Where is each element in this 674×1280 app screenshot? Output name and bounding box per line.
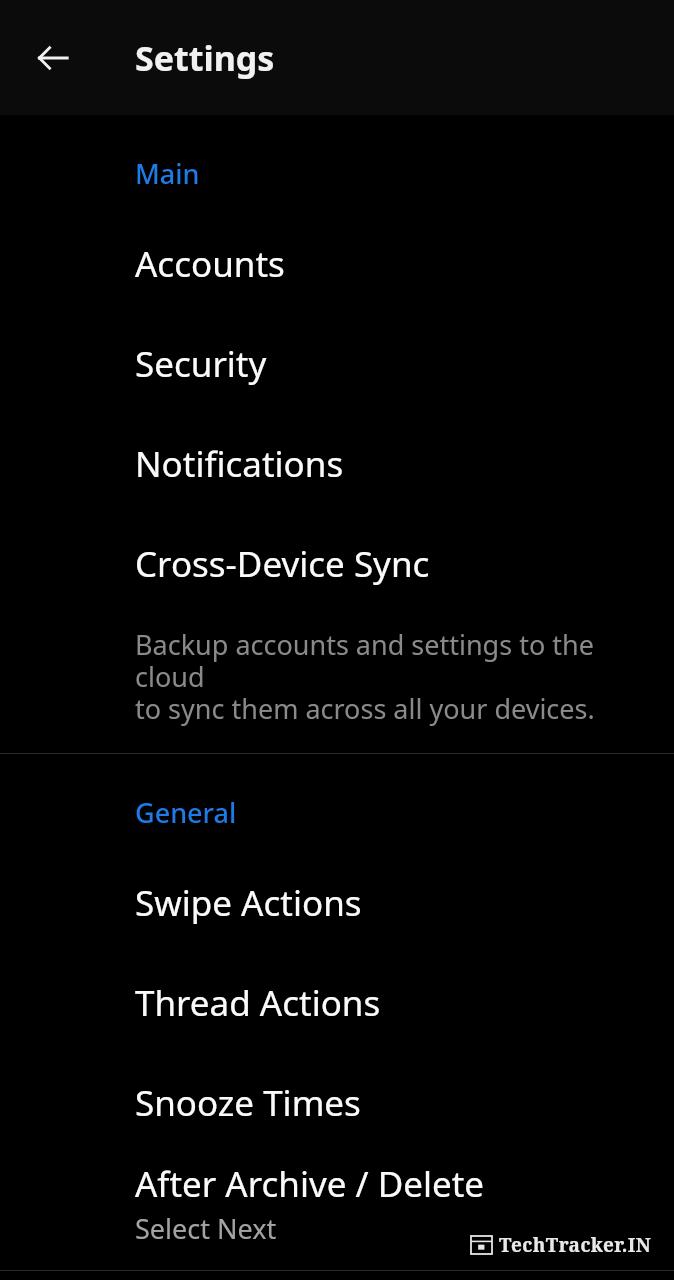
button[interactable]: Security — [0, 314, 674, 414]
button[interactable]: Accounts — [0, 214, 674, 314]
staticText: Settings — [135, 35, 275, 81]
staticText: General — [135, 794, 237, 831]
staticText: Snooze Times — [135, 1079, 361, 1127]
button[interactable]: Snooze Times — [0, 1053, 674, 1153]
staticText: Notifications — [135, 440, 344, 488]
button[interactable]: Cross-Device Sync — [0, 514, 674, 614]
staticText: Accounts — [135, 240, 285, 288]
staticText: Main — [135, 155, 200, 192]
button[interactable]: After Archive / Delete — [0, 1153, 674, 1253]
button[interactable]: Thread Actions — [0, 953, 674, 1053]
staticText: Security — [135, 340, 267, 388]
staticText: Backup accounts and settings to the clou… — [135, 626, 634, 727]
button[interactable]: Swipe Actions — [0, 853, 674, 953]
staticText: Select Next — [135, 1210, 277, 1247]
staticText: Cross-Device Sync — [135, 540, 430, 588]
staticText: TechTracker.IN — [499, 1232, 652, 1258]
staticText: Thread Actions — [135, 979, 381, 1027]
staticText: After Archive / Delete — [135, 1160, 485, 1208]
button[interactable]: Notifications — [0, 414, 674, 514]
button[interactable]: Back — [23, 28, 83, 88]
staticText: Swipe Actions — [135, 879, 362, 927]
